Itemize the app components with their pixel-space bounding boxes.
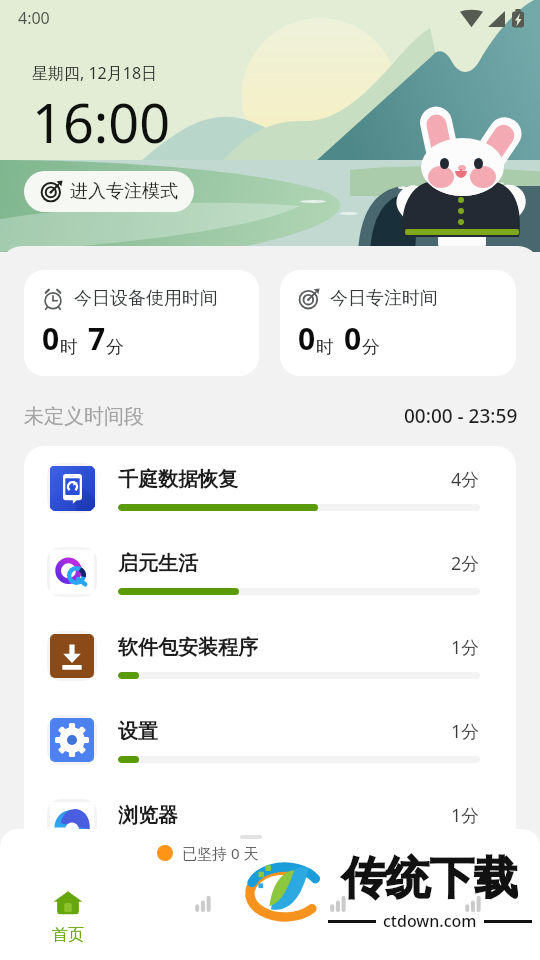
staticText: 今日设备使用时间 (74, 287, 218, 310)
button[interactable]: 千庭数据恢复 (24, 446, 516, 530)
staticText: 2分 (451, 551, 480, 576)
staticText: 未定义时间段 (24, 404, 144, 429)
button[interactable]: 发现 (270, 872, 405, 960)
staticText: 星期四, 12月18日 (32, 62, 158, 84)
staticText: 4:00 (18, 7, 50, 29)
staticText: 首页 (52, 925, 84, 945)
staticText: 时 (60, 336, 78, 359)
staticText: 时 (316, 336, 334, 359)
staticText: 0 (344, 318, 362, 359)
staticText: 1分 (451, 719, 480, 744)
button[interactable]: 设置 (24, 698, 516, 782)
staticText: 进入专注模式 (70, 180, 178, 203)
staticText: 浏览器 (118, 803, 178, 828)
staticText: 今日专注时间 (330, 287, 438, 310)
staticText: 4分 (451, 467, 480, 492)
button[interactable]: 统计 (135, 872, 270, 960)
button[interactable]: 进入专注模式 (24, 171, 194, 212)
staticText: 设置 (118, 719, 158, 744)
staticText: 0 (42, 318, 60, 359)
button[interactable]: 软件包安装程序 (24, 614, 516, 698)
staticText: 16:00 (32, 85, 171, 159)
button[interactable]: 浏览器 (24, 782, 516, 866)
staticText: 1分 (451, 803, 480, 828)
button[interactable]: 今日设备使用时间 (24, 270, 259, 376)
staticText: 00:00 - 23:59 (404, 403, 518, 429)
staticText: 千庭数据恢复 (118, 467, 238, 492)
staticText: 0 (298, 318, 316, 359)
button[interactable]: 今日专注时间 (280, 270, 516, 376)
staticText: 已坚持 0 天 (182, 843, 259, 863)
button[interactable]: 我的 (405, 872, 540, 960)
staticText: 传统下载 (342, 851, 518, 906)
staticText: 分 (106, 336, 124, 359)
button[interactable]: 首页 (0, 872, 135, 960)
staticText: 分 (362, 336, 380, 359)
staticText: 启元生活 (118, 551, 198, 576)
button[interactable]: 启元生活 (24, 530, 516, 614)
staticText: ctdown.com (383, 910, 477, 932)
staticText: 7 (88, 318, 106, 359)
staticText: 软件包安装程序 (118, 635, 258, 660)
staticText: 1分 (451, 635, 480, 660)
